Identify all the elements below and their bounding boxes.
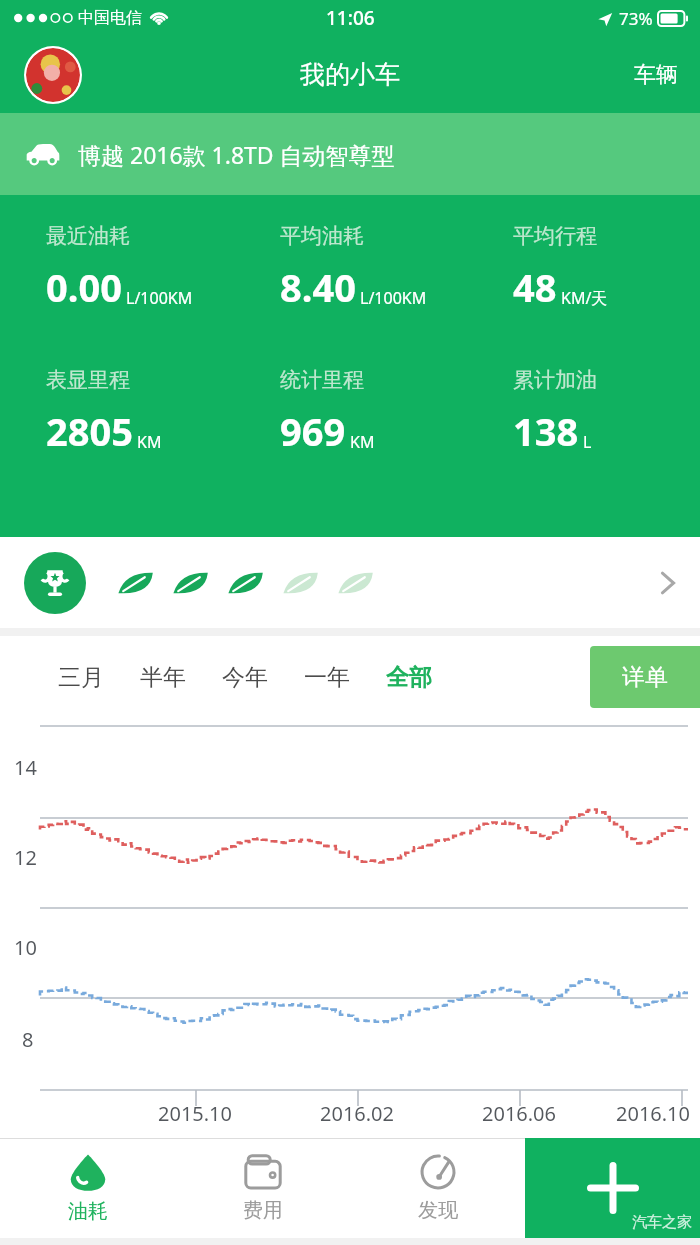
staticText: L: [583, 431, 592, 453]
button[interactable]: 表显里程: [0, 367, 234, 457]
button[interactable]: 平均油耗: [234, 223, 467, 313]
staticText: 一年: [304, 663, 350, 692]
button[interactable]: Add: [525, 1138, 700, 1238]
button[interactable]: 费用: [175, 1138, 350, 1238]
button[interactable]: 半年: [122, 651, 204, 704]
staticText: KM/天: [561, 287, 608, 309]
button[interactable]: 全部: [368, 651, 450, 704]
staticText: 14: [14, 754, 37, 781]
staticText: 汽车之家: [632, 1213, 692, 1232]
staticText: 全部: [386, 663, 432, 692]
staticText: 今年: [222, 663, 268, 692]
staticText: 累计加油: [513, 367, 597, 393]
staticText: 2805: [46, 405, 133, 457]
staticText: 我的小车: [300, 59, 400, 90]
button[interactable]: 平均行程: [467, 223, 700, 313]
button[interactable]: 今年: [204, 651, 286, 704]
button[interactable]: 车辆: [612, 47, 700, 103]
staticText: KM: [350, 431, 375, 453]
button[interactable]: Profile: [26, 48, 80, 102]
button[interactable]: 博越 2016款 1.8TD 自动智尊型: [0, 113, 700, 195]
staticText: 2016.10: [616, 1100, 690, 1127]
staticText: 48: [513, 261, 557, 313]
button[interactable]: 发现: [350, 1138, 525, 1238]
button[interactable]: 一年: [286, 651, 368, 704]
staticText: L/100KM: [126, 287, 193, 309]
staticText: 统计里程: [280, 367, 364, 393]
staticText: 12: [14, 844, 37, 871]
staticText: 138: [513, 405, 579, 457]
staticText: 2016.02: [320, 1100, 394, 1127]
staticText: 油耗: [68, 1199, 108, 1224]
button[interactable]: 统计里程: [234, 367, 467, 457]
staticText: 2015.10: [158, 1100, 232, 1127]
staticText: 2016.06: [482, 1100, 556, 1127]
button[interactable]: 油耗: [0, 1138, 175, 1238]
staticText: 8.40: [280, 261, 356, 313]
button[interactable]: [0, 537, 700, 628]
button[interactable]: 详单: [590, 646, 700, 708]
staticText: 10: [14, 934, 37, 961]
staticText: 博越 2016款 1.8TD 自动智尊型: [78, 139, 395, 170]
staticText: 11:06: [326, 5, 375, 31]
button[interactable]: 三月: [40, 651, 122, 704]
staticText: 73%: [619, 7, 653, 30]
staticText: L/100KM: [360, 287, 427, 309]
staticText: 详单: [622, 663, 668, 692]
staticText: 半年: [140, 663, 186, 692]
staticText: 发现: [418, 1198, 458, 1223]
staticText: 0.00: [46, 261, 122, 313]
staticText: 969: [280, 405, 346, 457]
staticText: 三月: [58, 663, 104, 692]
staticText: 平均油耗: [280, 223, 364, 249]
staticText: 中国电信: [78, 8, 142, 28]
staticText: 车辆: [634, 61, 678, 89]
button[interactable]: 累计加油: [467, 367, 700, 457]
staticText: 表显里程: [46, 367, 130, 393]
staticText: 8: [22, 1026, 34, 1053]
staticText: 费用: [243, 1198, 283, 1223]
button[interactable]: 最近油耗: [0, 223, 234, 313]
staticText: KM: [137, 431, 162, 453]
staticText: 最近油耗: [46, 223, 130, 249]
staticText: 平均行程: [513, 223, 597, 249]
